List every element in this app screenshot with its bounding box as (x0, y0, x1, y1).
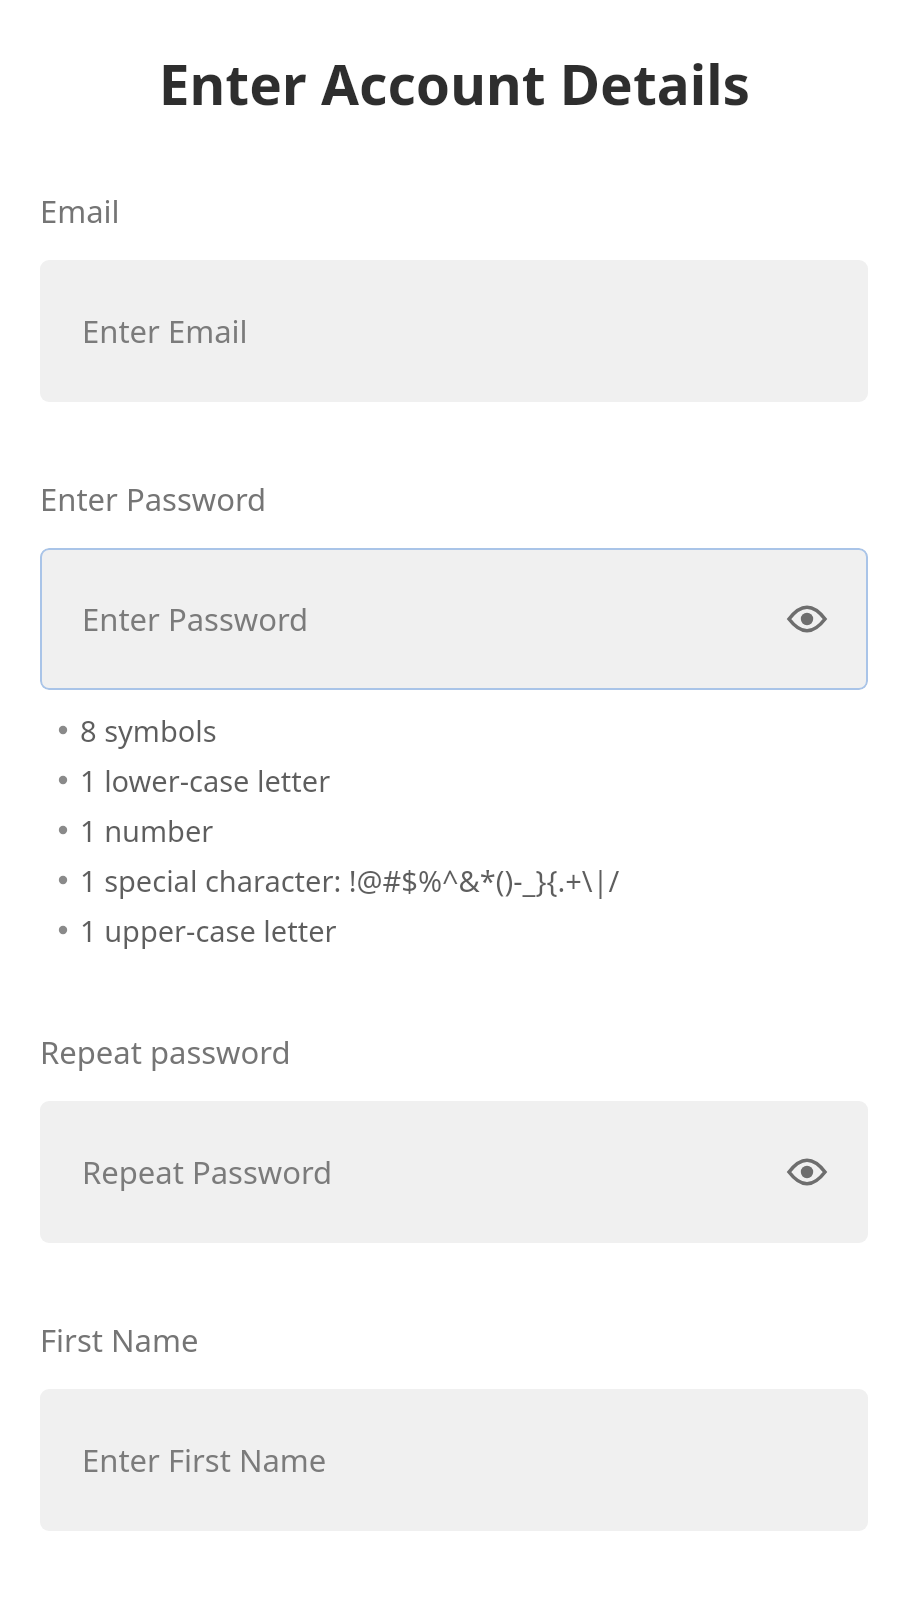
staticText: Repeat password (40, 1031, 291, 1073)
staticText: Repeat Password (82, 1151, 784, 1193)
staticText: 1 special character: !@#$%^&*()-_}{.+\|/ (80, 861, 620, 900)
staticText: Enter Account Details (0, 46, 909, 121)
staticText: Enter First Name (82, 1439, 830, 1481)
staticText: 1 number (80, 811, 214, 850)
button[interactable]: Show repeated password (784, 1155, 830, 1189)
button[interactable]: Enter Email (40, 260, 868, 402)
staticText: Enter Email (82, 310, 830, 352)
button[interactable]: Enter First Name (40, 1389, 868, 1531)
button[interactable]: Enter Password (40, 548, 868, 690)
button[interactable]: Show password (784, 602, 830, 636)
staticText: First Name (40, 1319, 199, 1361)
staticText: Enter Password (82, 598, 784, 640)
button[interactable]: Repeat Password (40, 1101, 868, 1243)
staticText: 1 upper-case letter (80, 911, 337, 950)
staticText: Enter Password (40, 478, 267, 520)
staticText: Email (40, 190, 120, 232)
staticText: 8 symbols (80, 711, 217, 750)
staticText: 1 lower-case letter (80, 761, 331, 800)
